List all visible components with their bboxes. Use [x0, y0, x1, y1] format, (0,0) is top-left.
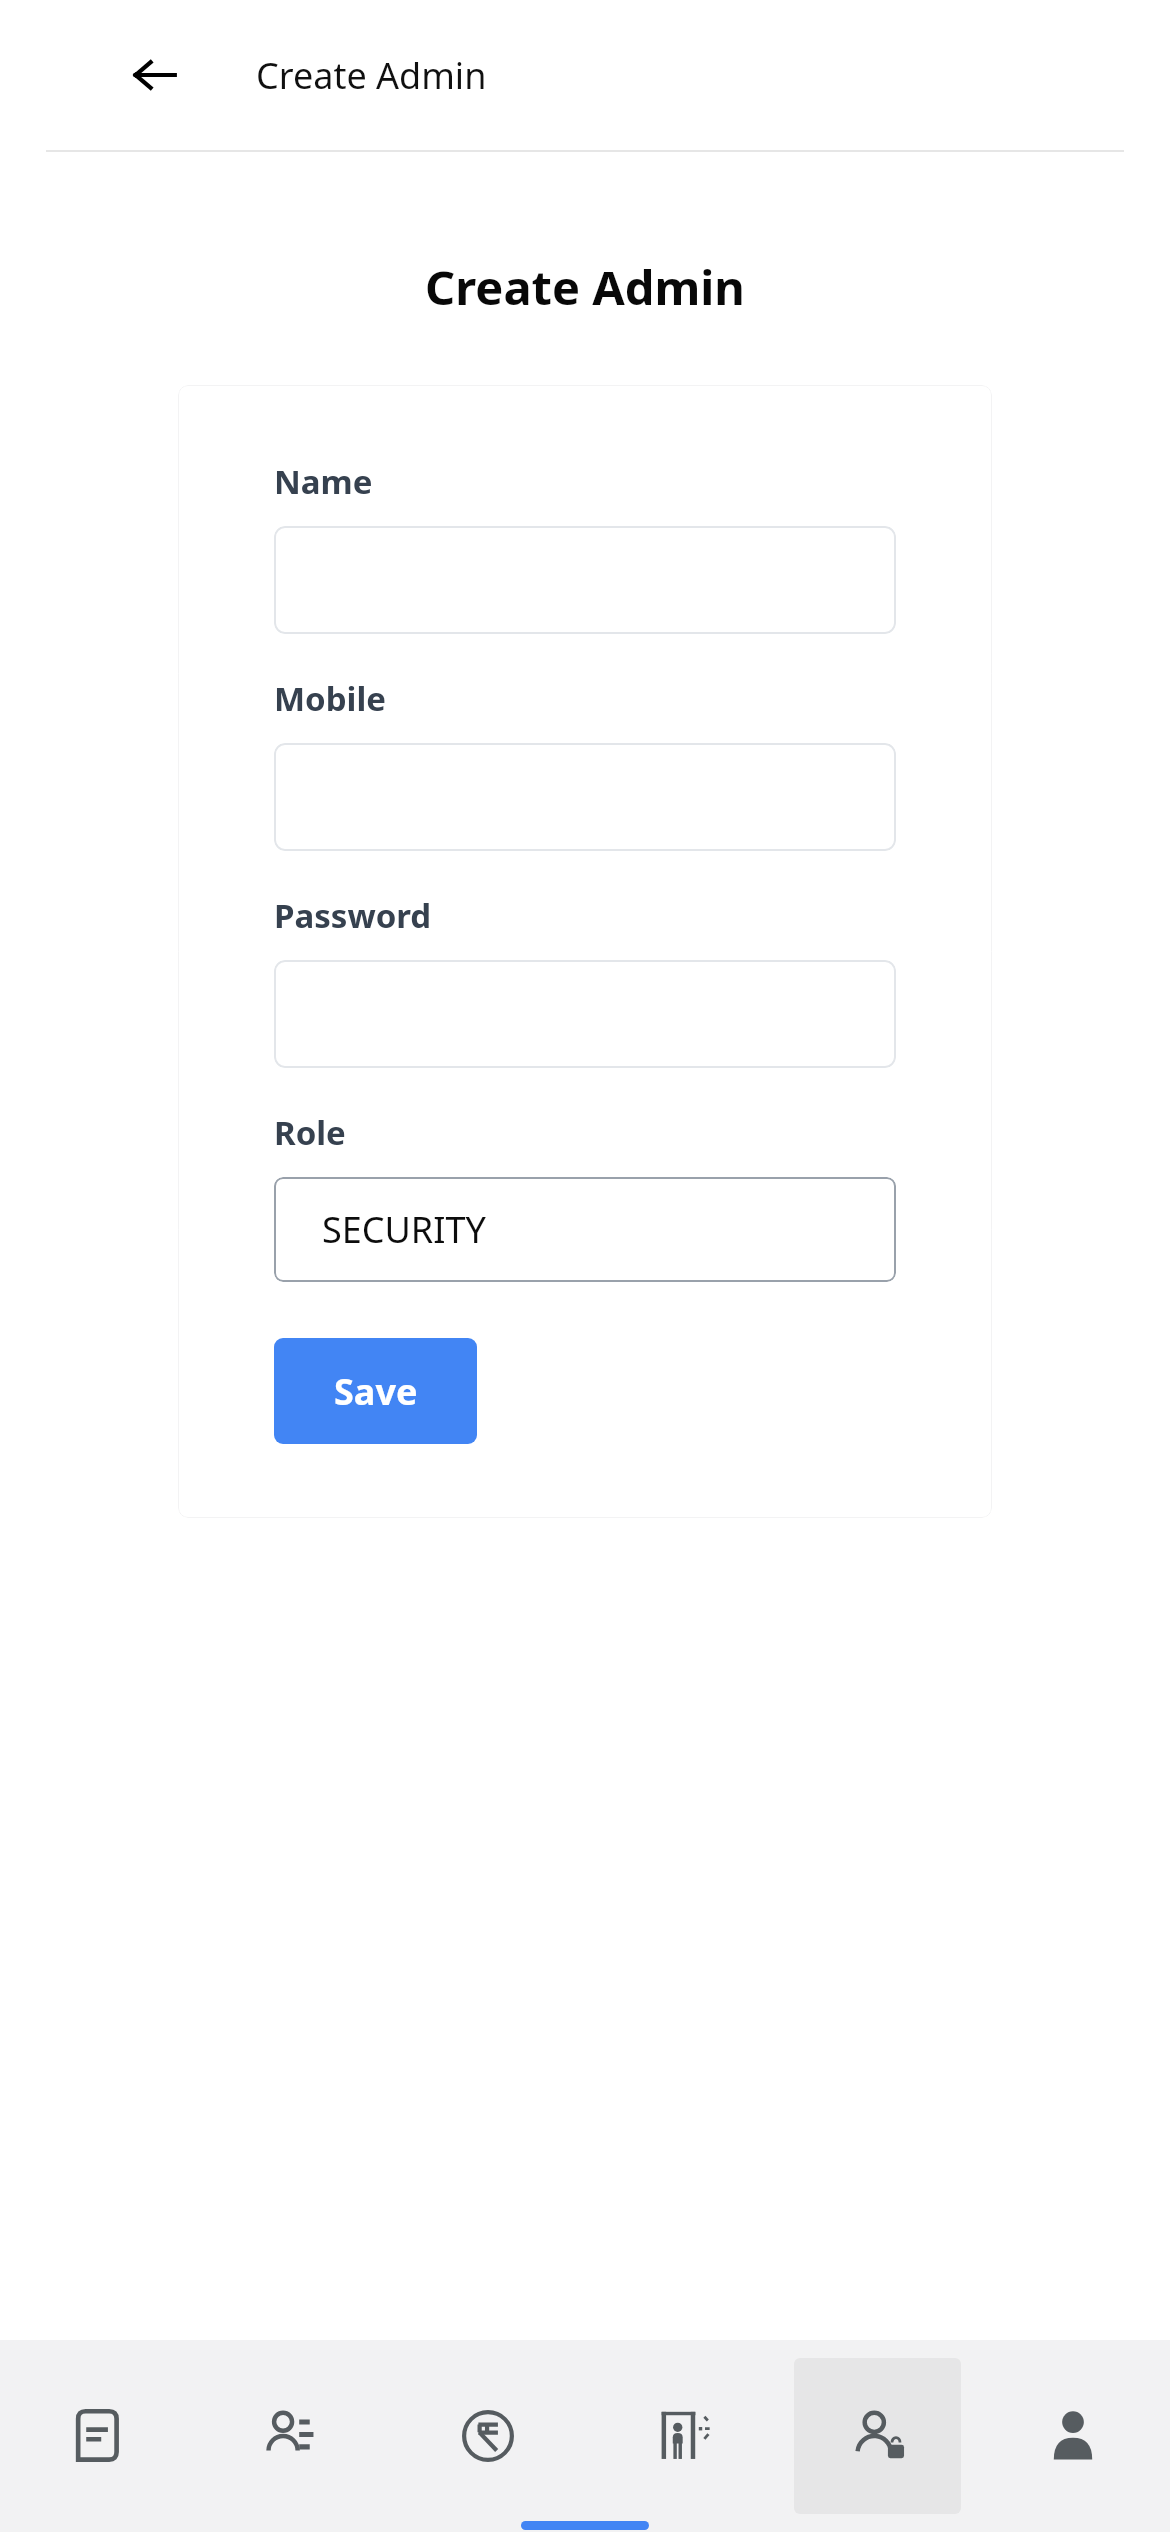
button[interactable]: Back — [120, 40, 190, 110]
button[interactable] — [274, 743, 896, 851]
staticText: Role — [274, 1110, 346, 1155]
staticText: Mobile — [274, 676, 387, 721]
staticText: Create Admin — [256, 51, 487, 100]
button[interactable]: Notes — [14, 2358, 181, 2514]
button[interactable]: Payments — [404, 2358, 571, 2514]
staticText: Save — [334, 1367, 418, 1416]
staticText: Password — [274, 893, 432, 938]
button[interactable] — [274, 526, 896, 634]
button[interactable]: SECURITY — [274, 1177, 896, 1282]
button[interactable]: Gate Scan — [599, 2358, 766, 2514]
button[interactable]: Profile — [989, 2358, 1156, 2514]
button[interactable]: Admin — [794, 2358, 961, 2514]
staticText: Create Admin — [0, 255, 1170, 319]
staticText: SECURITY — [322, 1205, 486, 1254]
button[interactable]: Save — [274, 1338, 477, 1444]
button[interactable] — [274, 960, 896, 1068]
button[interactable]: Visitors — [209, 2358, 376, 2514]
staticText: Name — [274, 459, 373, 504]
